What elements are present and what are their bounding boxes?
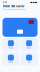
button[interactable]: Photos [2, 38, 19, 51]
staticText: People [8, 61, 13, 63]
staticText: Files [28, 61, 31, 63]
staticText: Photos [8, 47, 13, 49]
staticText: Keep private photos locked away [3, 8, 26, 10]
button[interactable]: Videos [21, 38, 37, 51]
staticText: Videos [27, 47, 32, 49]
button[interactable]: People [2, 52, 19, 65]
staticText: Protect Your Gallery [3, 5, 24, 8]
staticText: 9:41 [3, 1, 7, 4]
button[interactable]: Files [21, 52, 37, 65]
